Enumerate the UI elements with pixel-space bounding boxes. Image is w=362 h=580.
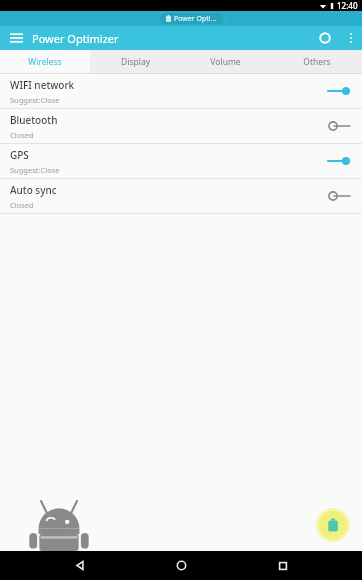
staticText: Closed xyxy=(10,200,34,210)
staticText: GPS xyxy=(10,148,29,162)
staticText: Closed xyxy=(10,130,34,140)
button[interactable]: GPS xyxy=(0,144,362,178)
button[interactable]: Home xyxy=(159,551,203,580)
staticText: Volume xyxy=(210,56,241,68)
staticText: Suggest:Close xyxy=(10,165,60,175)
staticText: Auto sync xyxy=(10,183,57,197)
button[interactable]: Volume xyxy=(180,50,271,73)
button[interactable]: Auto sync xyxy=(0,179,362,213)
button[interactable]: Display xyxy=(90,50,180,73)
button[interactable]: Bluetooth xyxy=(0,109,362,143)
button[interactable]: Back xyxy=(58,551,102,580)
button[interactable]: Toggle on xyxy=(326,83,352,99)
button[interactable]: Wireless xyxy=(0,50,90,73)
staticText: Others xyxy=(303,56,331,68)
button[interactable]: Optimize battery xyxy=(316,508,350,542)
staticText: Wireless xyxy=(28,56,62,68)
button[interactable]: Others xyxy=(271,50,362,73)
staticText: Suggest:Close xyxy=(10,95,60,105)
button[interactable]: Open navigation menu xyxy=(0,26,32,50)
staticText: Bluetooth xyxy=(10,113,58,127)
button[interactable]: Toggle off xyxy=(326,188,352,204)
button[interactable]: WIFI network xyxy=(0,74,362,108)
staticText: Power Opti... xyxy=(174,14,217,24)
staticText: Power Optimizer xyxy=(32,31,119,46)
button[interactable]: Toggle on xyxy=(326,153,352,169)
staticText: Display xyxy=(121,56,150,68)
button[interactable]: Power Opti... xyxy=(160,13,223,24)
button[interactable]: Toggle off xyxy=(326,118,352,134)
staticText: WIFI network xyxy=(10,78,75,92)
button[interactable]: Recent apps xyxy=(261,551,305,580)
button[interactable]: More options xyxy=(340,26,362,50)
staticText: 12:40 xyxy=(337,0,358,11)
button[interactable]: Refresh xyxy=(310,26,340,50)
